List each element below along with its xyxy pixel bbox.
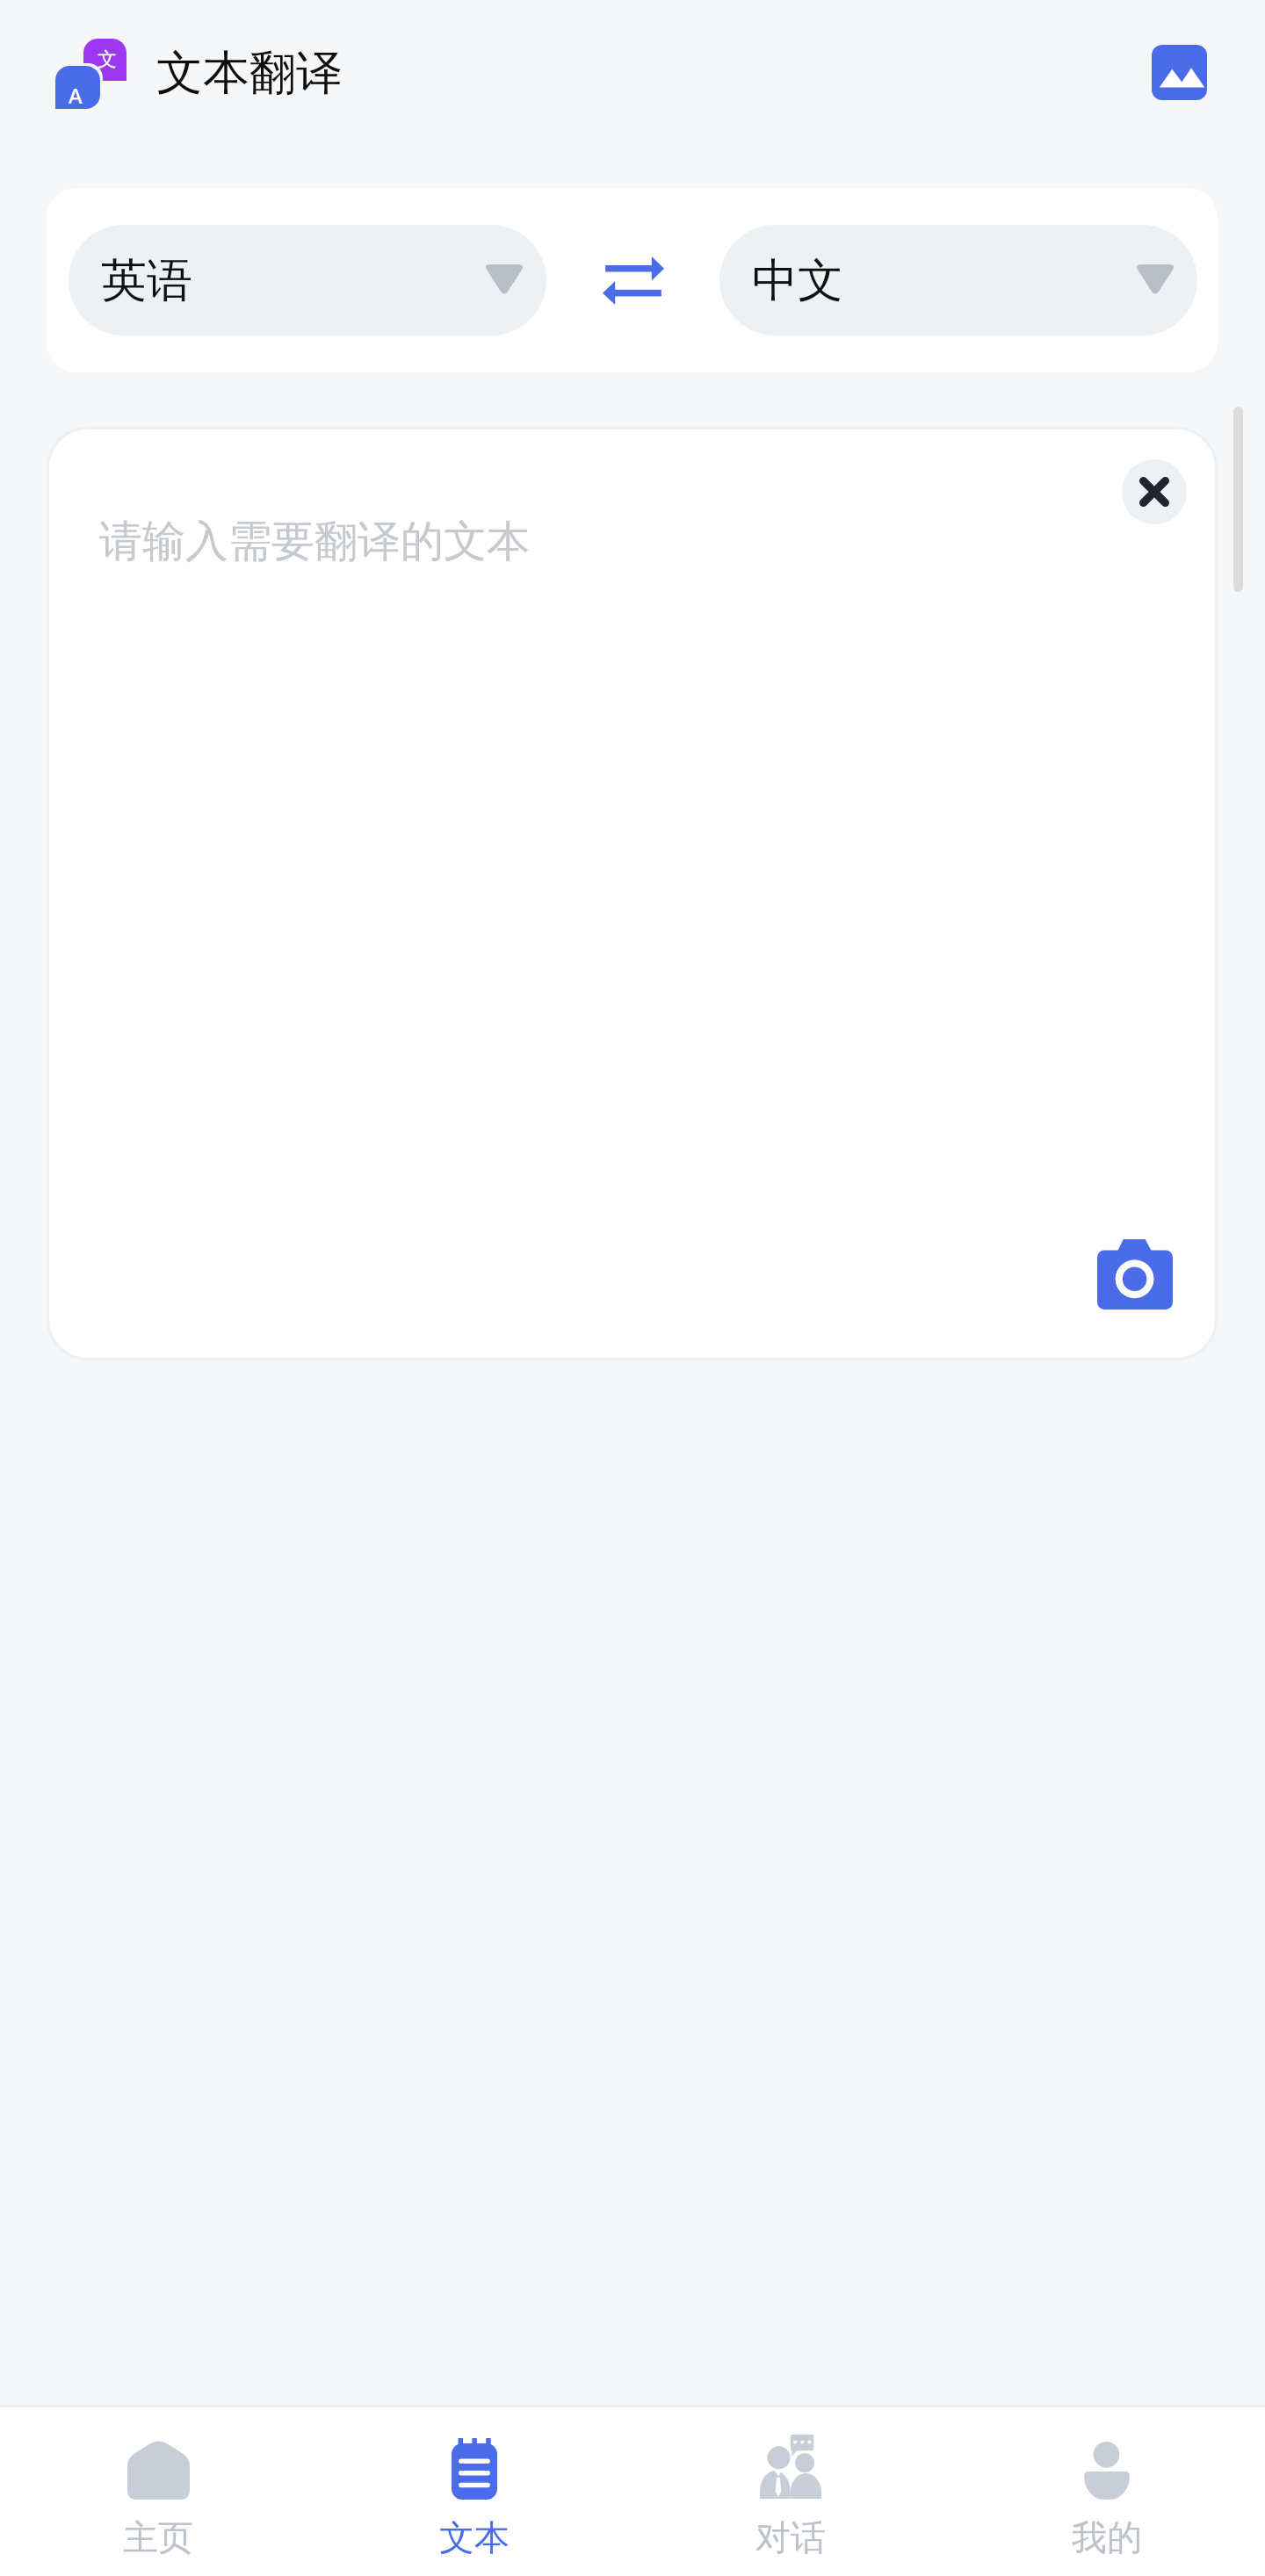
button[interactable]: 对话 bbox=[632, 2407, 949, 2576]
button[interactable] bbox=[49, 429, 1215, 1358]
staticText: 我的 bbox=[1072, 2515, 1142, 2559]
staticText: 英语 bbox=[101, 252, 192, 310]
staticText: 请输入需要翻译的文本 bbox=[99, 515, 530, 569]
button[interactable]: 中文 bbox=[719, 225, 1197, 336]
button[interactable]: Camera translate bbox=[1097, 1239, 1173, 1310]
button[interactable]: 文本 bbox=[316, 2407, 632, 2576]
button[interactable]: Clear text bbox=[1122, 459, 1187, 524]
button[interactable]: 我的 bbox=[949, 2407, 1265, 2576]
button[interactable]: Image translation bbox=[1152, 45, 1207, 100]
staticText: A bbox=[69, 81, 83, 110]
staticText: 文 bbox=[98, 47, 117, 72]
staticText: 对话 bbox=[755, 2515, 826, 2559]
staticText: 文本 bbox=[439, 2515, 510, 2559]
staticText: 中文 bbox=[752, 252, 843, 310]
staticText: 主页 bbox=[123, 2515, 193, 2559]
button[interactable]: Swap languages bbox=[546, 225, 719, 336]
button[interactable]: 主页 bbox=[0, 2407, 316, 2576]
staticText: 文本翻译 bbox=[156, 44, 343, 103]
button[interactable]: 英语 bbox=[69, 225, 546, 336]
